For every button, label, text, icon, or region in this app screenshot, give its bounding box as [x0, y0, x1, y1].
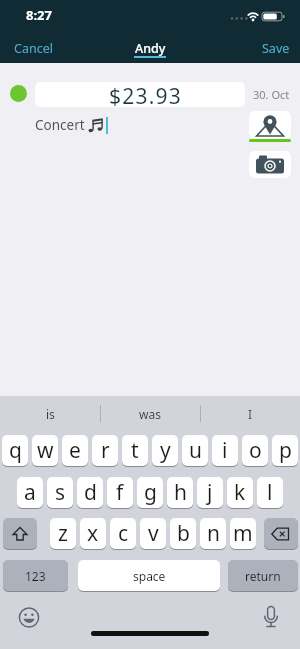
staticText: z	[58, 519, 68, 548]
button[interactable]: s	[47, 477, 73, 508]
staticText: g	[144, 478, 157, 507]
staticText: u	[189, 436, 202, 465]
button[interactable]: c	[110, 518, 136, 549]
button[interactable]: a	[17, 477, 43, 508]
staticText: Concert	[35, 116, 85, 134]
button[interactable]: i	[212, 435, 238, 466]
button[interactable]: d	[77, 477, 103, 508]
staticText: a	[24, 478, 36, 507]
button[interactable]: r	[92, 435, 118, 466]
button[interactable]	[249, 151, 291, 178]
staticText: e	[69, 436, 81, 465]
staticText: h	[174, 478, 187, 507]
button[interactable]: v	[140, 518, 166, 549]
staticText: l	[267, 478, 273, 507]
button[interactable]: n	[200, 518, 226, 549]
staticText: m	[233, 519, 253, 548]
button[interactable]	[14, 602, 44, 632]
button[interactable]: y	[152, 435, 178, 466]
staticText: b	[177, 519, 190, 548]
button[interactable]	[249, 111, 291, 139]
staticText: o	[249, 436, 262, 465]
staticText: i	[222, 436, 228, 465]
staticText: 123	[25, 568, 46, 584]
button[interactable]: $23.93	[35, 82, 245, 107]
button[interactable]: return	[228, 560, 298, 591]
button[interactable]: f	[107, 477, 133, 508]
button[interactable]: Save	[262, 40, 290, 57]
button[interactable]: Cancel	[14, 40, 53, 57]
button[interactable]: j	[197, 477, 223, 508]
button[interactable]: b	[170, 518, 196, 549]
staticText: y	[160, 436, 171, 465]
button[interactable]: u	[182, 435, 208, 466]
button[interactable]: 123	[3, 560, 68, 591]
staticText: s	[55, 478, 66, 507]
staticText: q	[9, 436, 22, 465]
staticText: Andy	[135, 40, 166, 57]
staticText: v	[148, 519, 159, 548]
button[interactable]: w	[32, 435, 58, 466]
button[interactable]: l	[257, 477, 283, 508]
button[interactable]	[10, 85, 27, 102]
button[interactable]: g	[137, 477, 163, 508]
staticText: j	[207, 478, 213, 507]
button[interactable]	[264, 518, 298, 549]
button[interactable]: space	[78, 560, 220, 591]
staticText: return	[245, 568, 281, 584]
button[interactable]: x	[80, 518, 106, 549]
button[interactable]: q	[2, 435, 28, 466]
button[interactable]: I	[200, 403, 300, 425]
button[interactable]: was	[100, 403, 200, 425]
staticText: 30. Oct	[253, 87, 290, 102]
button[interactable]	[3, 518, 37, 549]
button[interactable]: is	[0, 403, 100, 425]
staticText: 8:27	[26, 6, 52, 24]
button[interactable]: o	[242, 435, 268, 466]
button[interactable]: k	[227, 477, 253, 508]
button[interactable]	[256, 602, 286, 632]
button[interactable]: m	[230, 518, 256, 549]
staticText: r	[101, 436, 110, 465]
staticText: was	[139, 406, 161, 422]
staticText: p	[279, 436, 292, 465]
staticText: f	[116, 478, 124, 507]
button[interactable]: e	[62, 435, 88, 466]
staticText: k	[234, 478, 246, 507]
staticText: is	[46, 406, 55, 422]
button[interactable]: p	[272, 435, 298, 466]
button[interactable]: h	[167, 477, 193, 508]
staticText: space	[133, 568, 166, 584]
staticText: x	[87, 519, 99, 548]
staticText: t	[131, 436, 139, 465]
button[interactable]: z	[50, 518, 76, 549]
staticText: c	[118, 519, 129, 548]
button[interactable]: t	[122, 435, 148, 466]
staticText: w	[37, 436, 54, 465]
staticText: n	[207, 519, 220, 548]
staticText: d	[84, 478, 97, 507]
staticText: $23.93	[109, 82, 182, 107]
staticText: I	[248, 406, 253, 422]
